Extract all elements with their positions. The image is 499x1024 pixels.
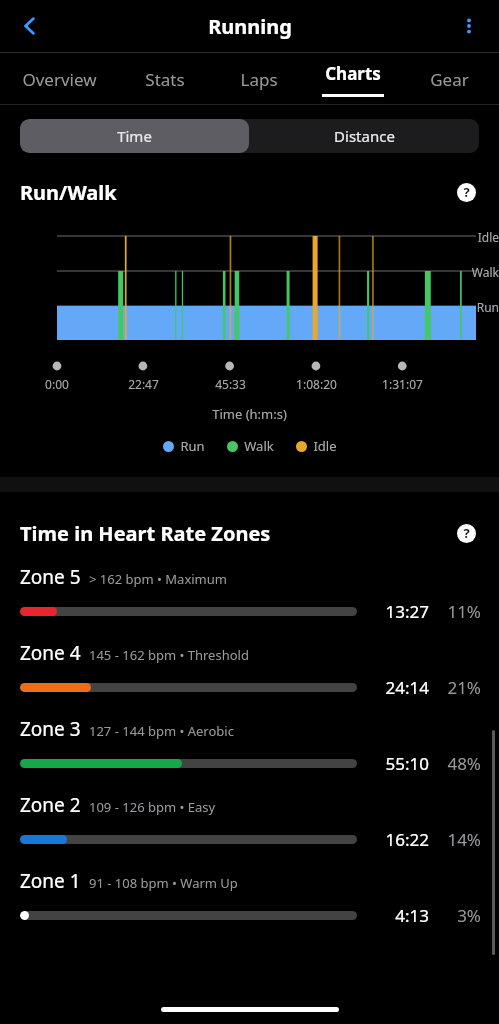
staticText: 91 - 108 bpm • Warm Up xyxy=(89,874,238,892)
staticText: Run xyxy=(449,299,499,315)
button[interactable]: Overview xyxy=(0,53,118,105)
button[interactable]: Stats xyxy=(118,53,212,105)
staticText: Running xyxy=(208,13,292,40)
staticText: 145 - 162 bpm • Threshold xyxy=(89,646,249,664)
staticText: Zone 1 xyxy=(20,868,81,894)
staticText: Idle xyxy=(449,229,499,245)
staticText: 22:47 xyxy=(128,376,159,389)
staticText: 4:13 xyxy=(367,904,429,927)
staticText: 45:33 xyxy=(215,376,246,389)
staticText: 24:14 xyxy=(367,676,429,699)
button[interactable]: Distance xyxy=(249,119,479,153)
staticText: Run/Walk xyxy=(20,179,451,206)
staticText: Zone 2 xyxy=(20,792,81,818)
button[interactable]: Zone 3 xyxy=(0,716,499,792)
staticText: ? xyxy=(463,524,470,542)
staticText: Zone 5 xyxy=(20,564,81,590)
staticText: Time xyxy=(117,126,152,146)
button[interactable]: Time xyxy=(20,119,249,153)
staticText: Idle xyxy=(313,437,337,455)
staticText: 21% xyxy=(439,676,481,699)
staticText: Zone 3 xyxy=(20,716,81,742)
staticText: 48% xyxy=(439,752,481,775)
staticText: Distance xyxy=(334,126,395,146)
button[interactable]: Charts xyxy=(306,53,400,105)
button[interactable]: Zone 2 xyxy=(0,792,499,868)
staticText: Time (h:m:s) xyxy=(0,405,499,423)
staticText: Laps xyxy=(240,68,278,91)
button[interactable]: Back xyxy=(8,4,52,48)
staticText: 11% xyxy=(439,600,481,623)
staticText: 1:08:20 xyxy=(296,376,337,389)
staticText: 55:10 xyxy=(367,752,429,775)
staticText: 127 - 144 bpm • Aerobic xyxy=(89,722,234,740)
staticText: ? xyxy=(463,183,470,201)
staticText: 1:31:07 xyxy=(382,376,423,389)
staticText: 14% xyxy=(439,828,481,851)
staticText: Run xyxy=(180,437,205,455)
staticText: Gear xyxy=(430,68,469,91)
staticText: Walk xyxy=(244,437,274,455)
staticText: 0:00 xyxy=(45,376,69,389)
staticText: Time in Heart Rate Zones xyxy=(20,520,451,547)
button[interactable]: Zone 1 xyxy=(0,868,499,944)
staticText: Overview xyxy=(22,68,97,91)
button[interactable]: Gear xyxy=(400,53,499,105)
button[interactable]: Help xyxy=(451,177,481,207)
staticText: 16:22 xyxy=(367,828,429,851)
staticText: > 162 bpm • Maximum xyxy=(89,570,227,588)
button[interactable]: Zone 4 xyxy=(0,640,499,716)
staticText: Stats xyxy=(145,68,185,91)
staticText: 13:27 xyxy=(367,600,429,623)
staticText: 3% xyxy=(439,904,481,927)
staticText: Charts xyxy=(325,62,381,85)
button[interactable]: Help xyxy=(451,518,481,548)
staticText: Zone 4 xyxy=(20,640,81,666)
button[interactable]: Zone 5 xyxy=(0,564,499,640)
staticText: 109 - 126 bpm • Easy xyxy=(89,798,216,816)
button[interactable]: Laps xyxy=(212,53,306,105)
button[interactable]: More options xyxy=(447,4,491,48)
staticText: Walk xyxy=(449,264,499,280)
